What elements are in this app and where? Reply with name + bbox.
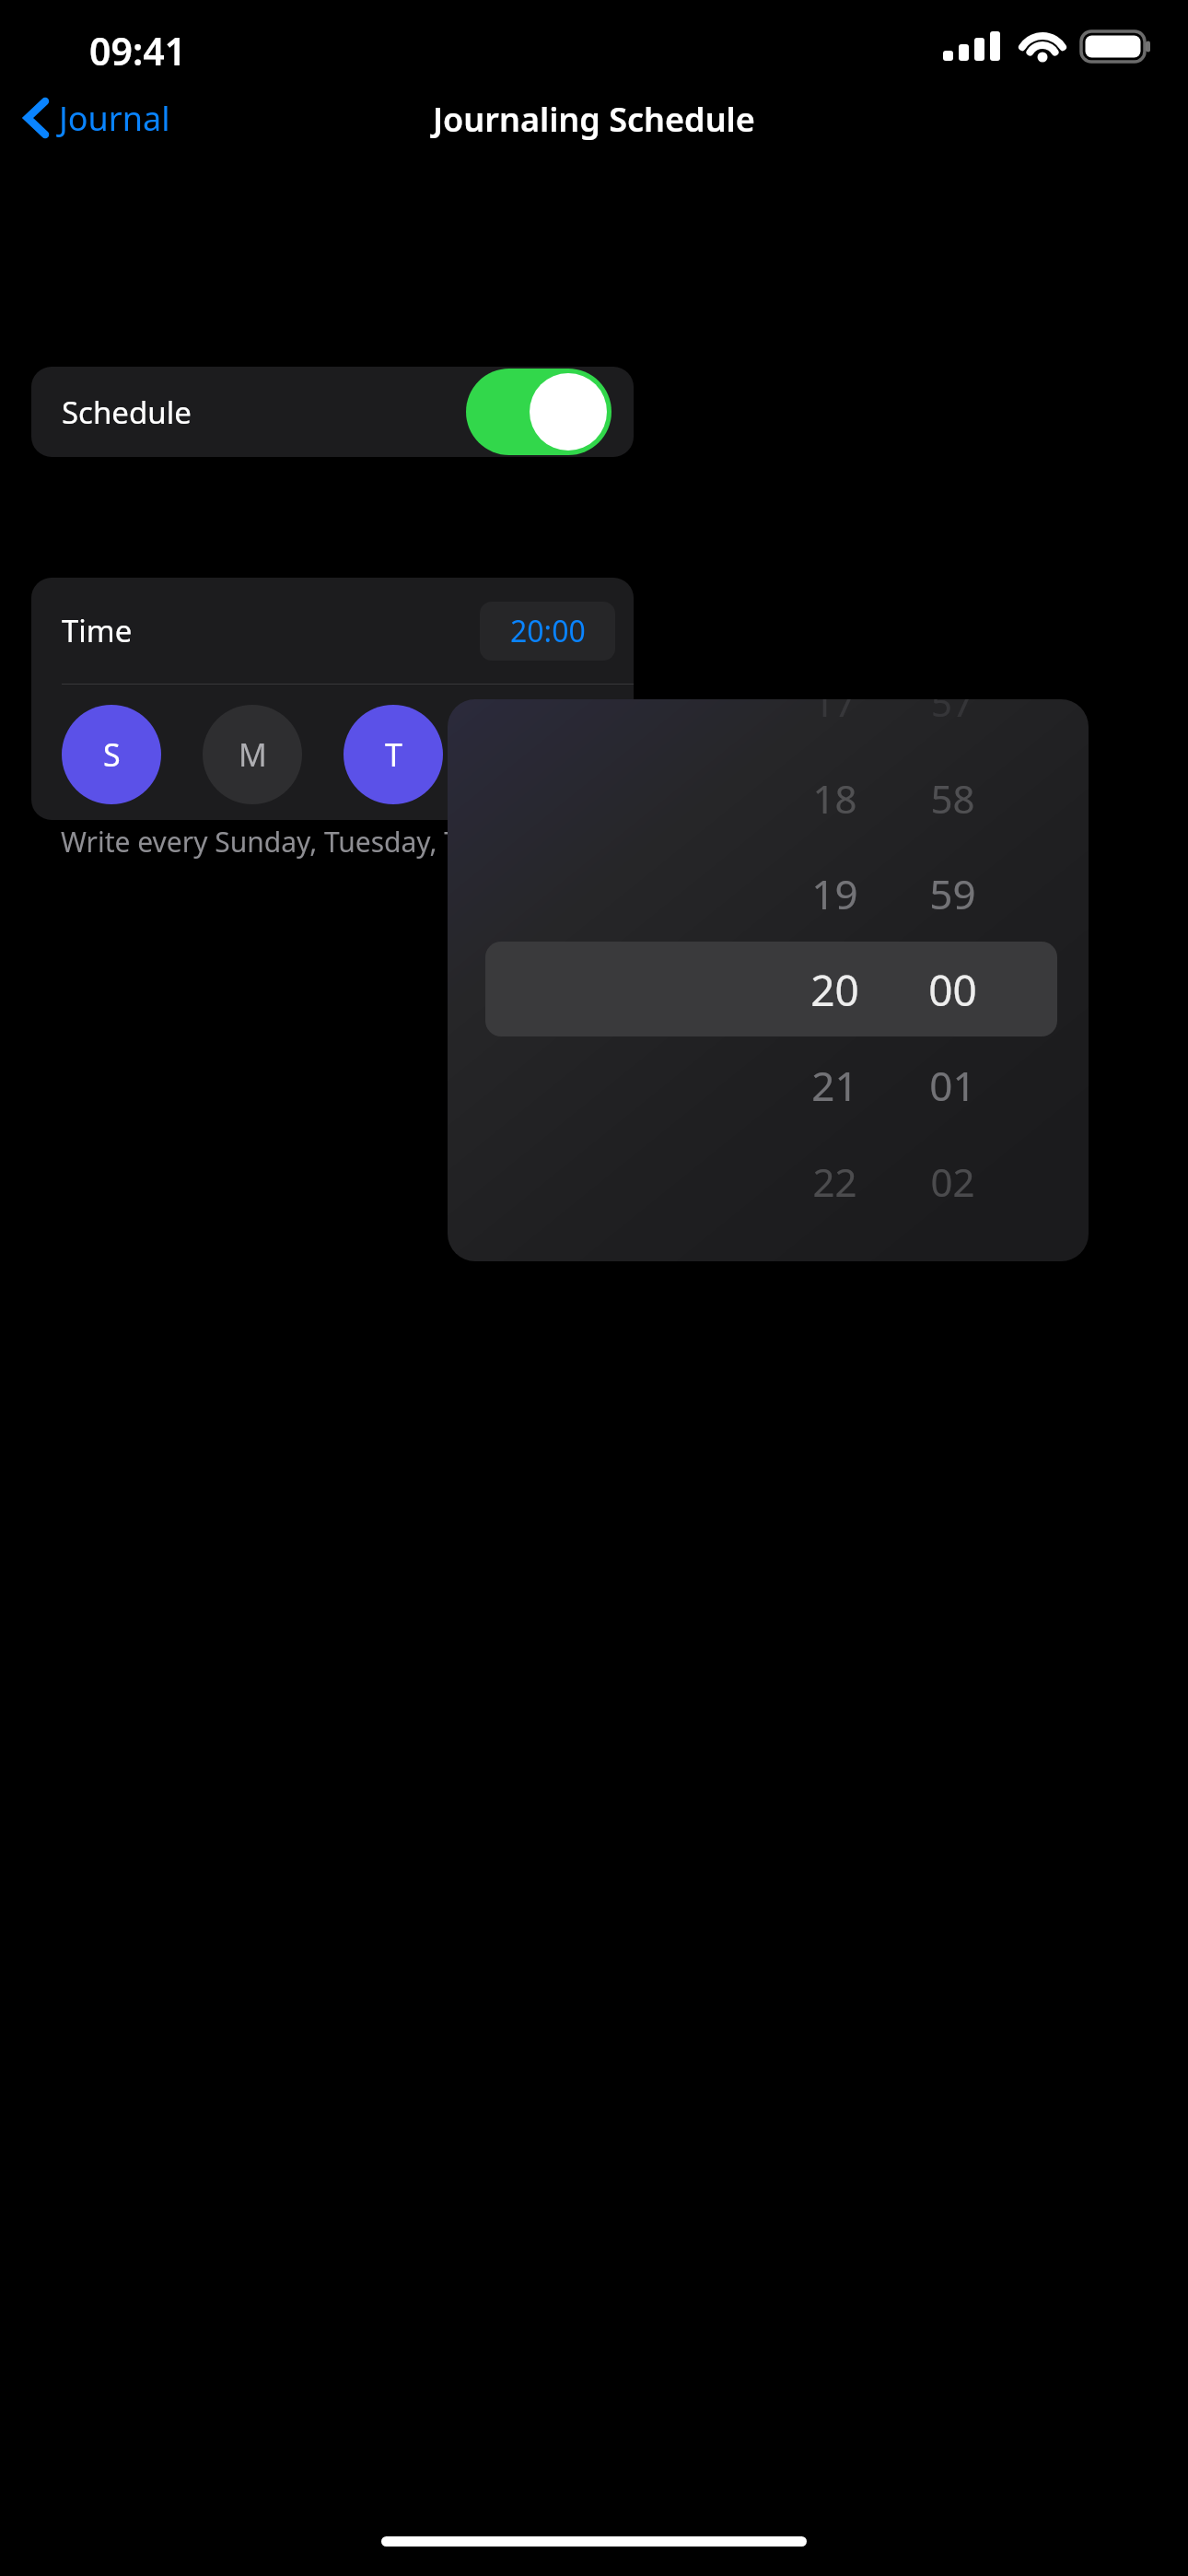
staticText: Journal <box>59 96 170 141</box>
staticText: S <box>103 733 121 776</box>
staticText: T <box>385 733 402 776</box>
staticText: 59 <box>929 866 976 921</box>
button[interactable]: 01 <box>888 1054 1017 1117</box>
staticText: 18 <box>812 772 857 825</box>
staticText: 00 <box>928 961 977 1019</box>
staticText: 57 <box>931 699 973 727</box>
button[interactable]: T <box>344 705 443 804</box>
button[interactable]: Schedule toggle, on <box>466 369 611 455</box>
staticText: 17 <box>813 699 856 727</box>
button[interactable]: Schedule <box>31 367 634 457</box>
staticText: 01 <box>929 1058 976 1113</box>
button[interactable]: 21 <box>770 1054 899 1117</box>
button[interactable]: Journal <box>17 88 178 148</box>
staticText: 22 <box>812 1155 857 1208</box>
button[interactable]: 22 <box>770 1150 899 1212</box>
button[interactable]: 57 <box>888 699 1017 733</box>
button[interactable]: M <box>203 705 302 804</box>
button[interactable]: 58 <box>888 767 1017 829</box>
staticText: 09:41 <box>89 25 187 76</box>
staticText: Time <box>62 610 133 651</box>
button[interactable]: 17 <box>770 699 899 733</box>
staticText: 20 <box>810 961 859 1019</box>
staticText: 19 <box>811 866 858 921</box>
staticText: 58 <box>930 772 975 825</box>
staticText: Schedule <box>62 392 192 433</box>
button[interactable]: 20 <box>770 958 899 1021</box>
staticText: Write every Sunday, Tuesday, Thursday at… <box>61 823 676 861</box>
button[interactable]: 18 <box>770 767 899 829</box>
staticText: Journaling Schedule <box>433 97 755 142</box>
button[interactable]: 00 <box>888 958 1017 1021</box>
button[interactable]: 19 <box>770 862 899 925</box>
staticText: M <box>239 733 267 776</box>
button[interactable]: Time <box>31 578 634 684</box>
button[interactable]: 02 <box>888 1150 1017 1212</box>
button[interactable]: 59 <box>888 862 1017 925</box>
staticText: 21 <box>811 1058 858 1113</box>
staticText: 20:00 <box>510 611 586 651</box>
button[interactable]: S <box>62 705 161 804</box>
staticText: 02 <box>930 1155 975 1208</box>
